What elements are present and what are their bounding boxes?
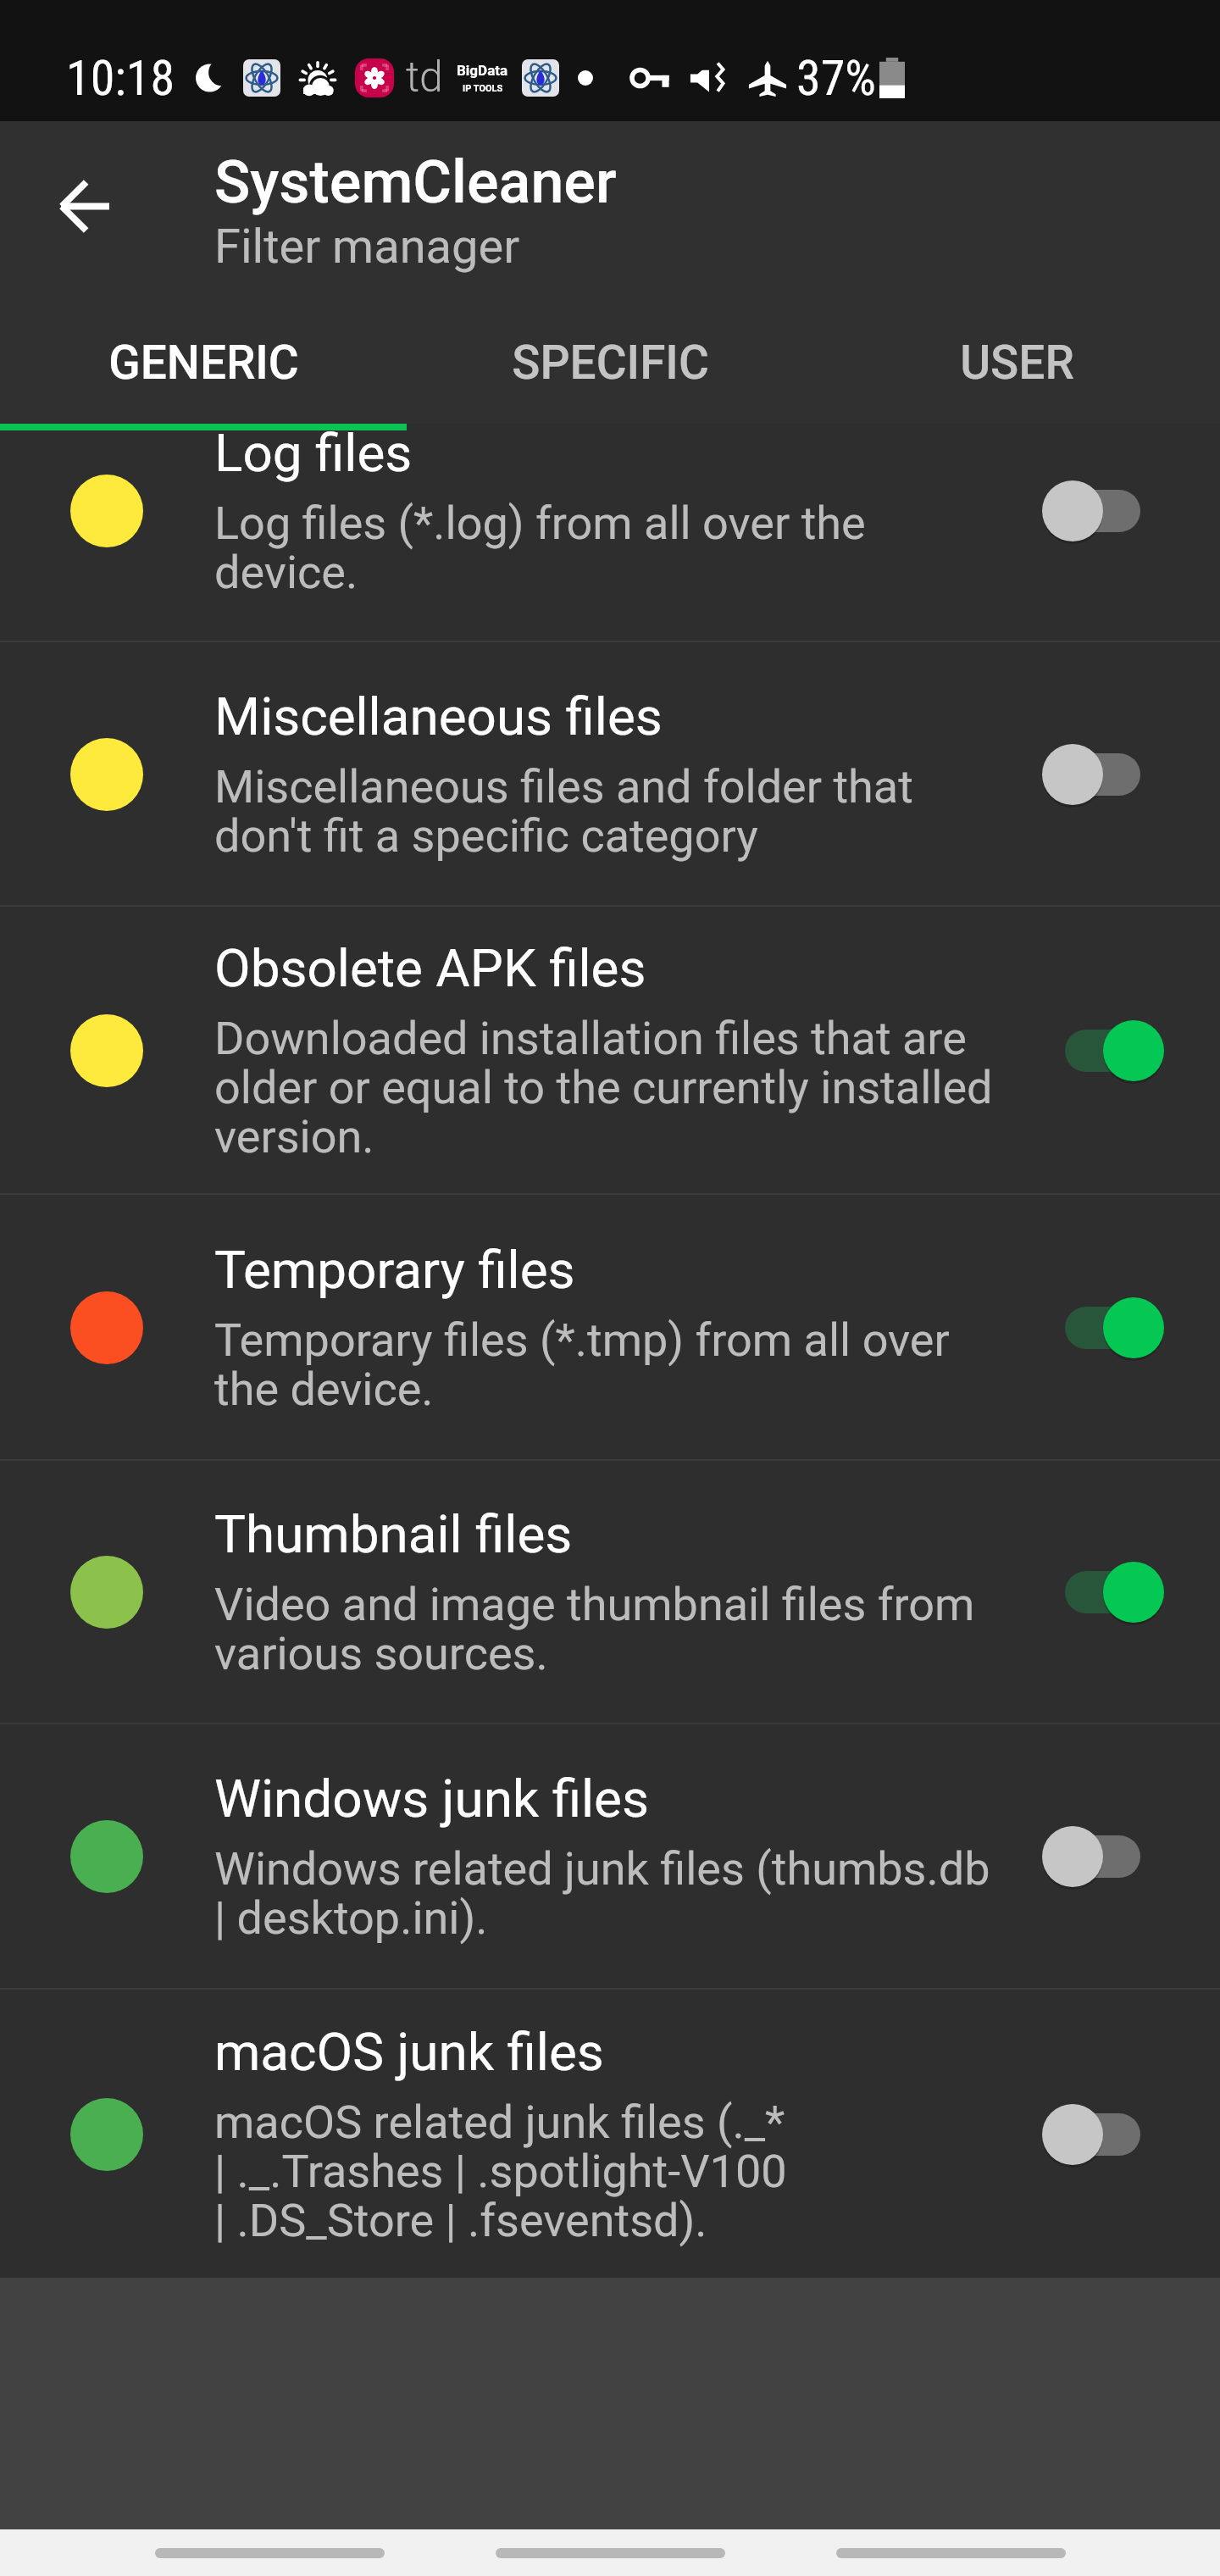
staticText: 10:18 <box>66 49 175 107</box>
button[interactable]: SPECIFIC <box>407 301 813 424</box>
staticText: Temporary files <box>214 1239 575 1301</box>
staticText: Log files <box>214 424 413 484</box>
button[interactable]: Thumbnail files <box>0 1461 1220 1723</box>
button[interactable]: Windows junk files <box>0 1724 1220 1988</box>
staticText: 37% <box>796 49 876 107</box>
button[interactable]: Recent apps <box>155 2548 385 2558</box>
staticText: macOS junk files <box>214 2021 604 2083</box>
staticText: Windows related junk files (thumbs.db | … <box>214 1842 990 1945</box>
button[interactable]: Log files <box>0 424 1220 641</box>
button[interactable]: Toggle on <box>1042 1561 1162 1624</box>
button[interactable]: Toggle off <box>1042 1825 1162 1888</box>
staticText: Windows junk files <box>214 1768 649 1829</box>
staticText: SPECIFIC <box>512 336 709 390</box>
staticText: Miscellaneous files and folder that don'… <box>214 760 913 863</box>
staticText: IP TOOLS <box>463 83 503 94</box>
staticText: Obsolete APK files <box>214 937 646 999</box>
button[interactable]: Toggle on <box>1042 1296 1162 1359</box>
button[interactable]: Temporary files <box>0 1195 1220 1459</box>
button[interactable]: Back <box>836 2548 1066 2558</box>
button[interactable]: Toggle off <box>1042 2103 1162 2166</box>
staticText: macOS related junk files (._* | ._.Trash… <box>214 2096 787 2247</box>
staticText: Temporary files (*.tmp) from all over th… <box>214 1313 950 1416</box>
button[interactable]: USER <box>813 301 1220 424</box>
staticText: BigData <box>457 62 508 79</box>
button[interactable]: Back <box>44 165 125 247</box>
button[interactable]: GENERIC <box>0 301 407 424</box>
staticText: Filter manager <box>214 219 520 275</box>
staticText: Downloaded installation files that are o… <box>214 1012 993 1163</box>
staticText: Thumbnail files <box>214 1503 573 1565</box>
staticText: SystemCleaner <box>214 147 617 217</box>
staticText: Log files (*.log) from all over the devi… <box>214 497 866 599</box>
staticText: USER <box>960 336 1074 390</box>
staticText: Video and image thumbnail files from var… <box>214 1578 975 1680</box>
button[interactable]: Toggle off <box>1042 743 1162 806</box>
staticText: GENERIC <box>108 336 299 390</box>
button[interactable]: Obsolete APK files <box>0 907 1220 1193</box>
staticText: td <box>406 53 443 103</box>
button[interactable]: Toggle off <box>1042 480 1162 542</box>
button[interactable]: Miscellaneous files <box>0 642 1220 905</box>
staticText: Miscellaneous files <box>214 686 663 747</box>
button[interactable]: Toggle on <box>1042 1019 1162 1082</box>
button[interactable]: macOS junk files <box>0 1990 1220 2278</box>
button[interactable]: Home <box>496 2548 725 2558</box>
